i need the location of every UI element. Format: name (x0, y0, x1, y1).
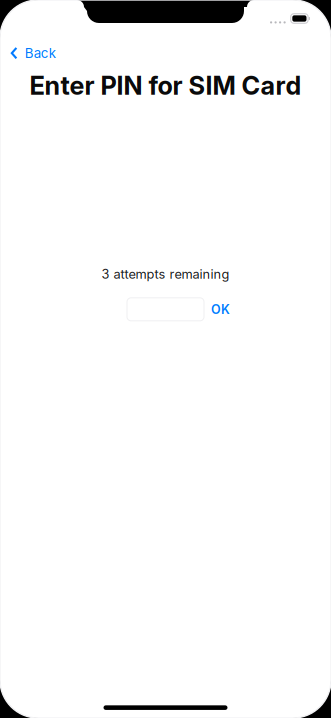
button[interactable]: OK (206, 296, 235, 323)
staticText: Enter PIN for SIM Card (29, 70, 301, 101)
staticText: 3 attempts remaining (101, 266, 229, 282)
button[interactable]: Back (0, 40, 56, 66)
staticText: Back (25, 45, 56, 61)
staticText: OK (211, 302, 230, 317)
